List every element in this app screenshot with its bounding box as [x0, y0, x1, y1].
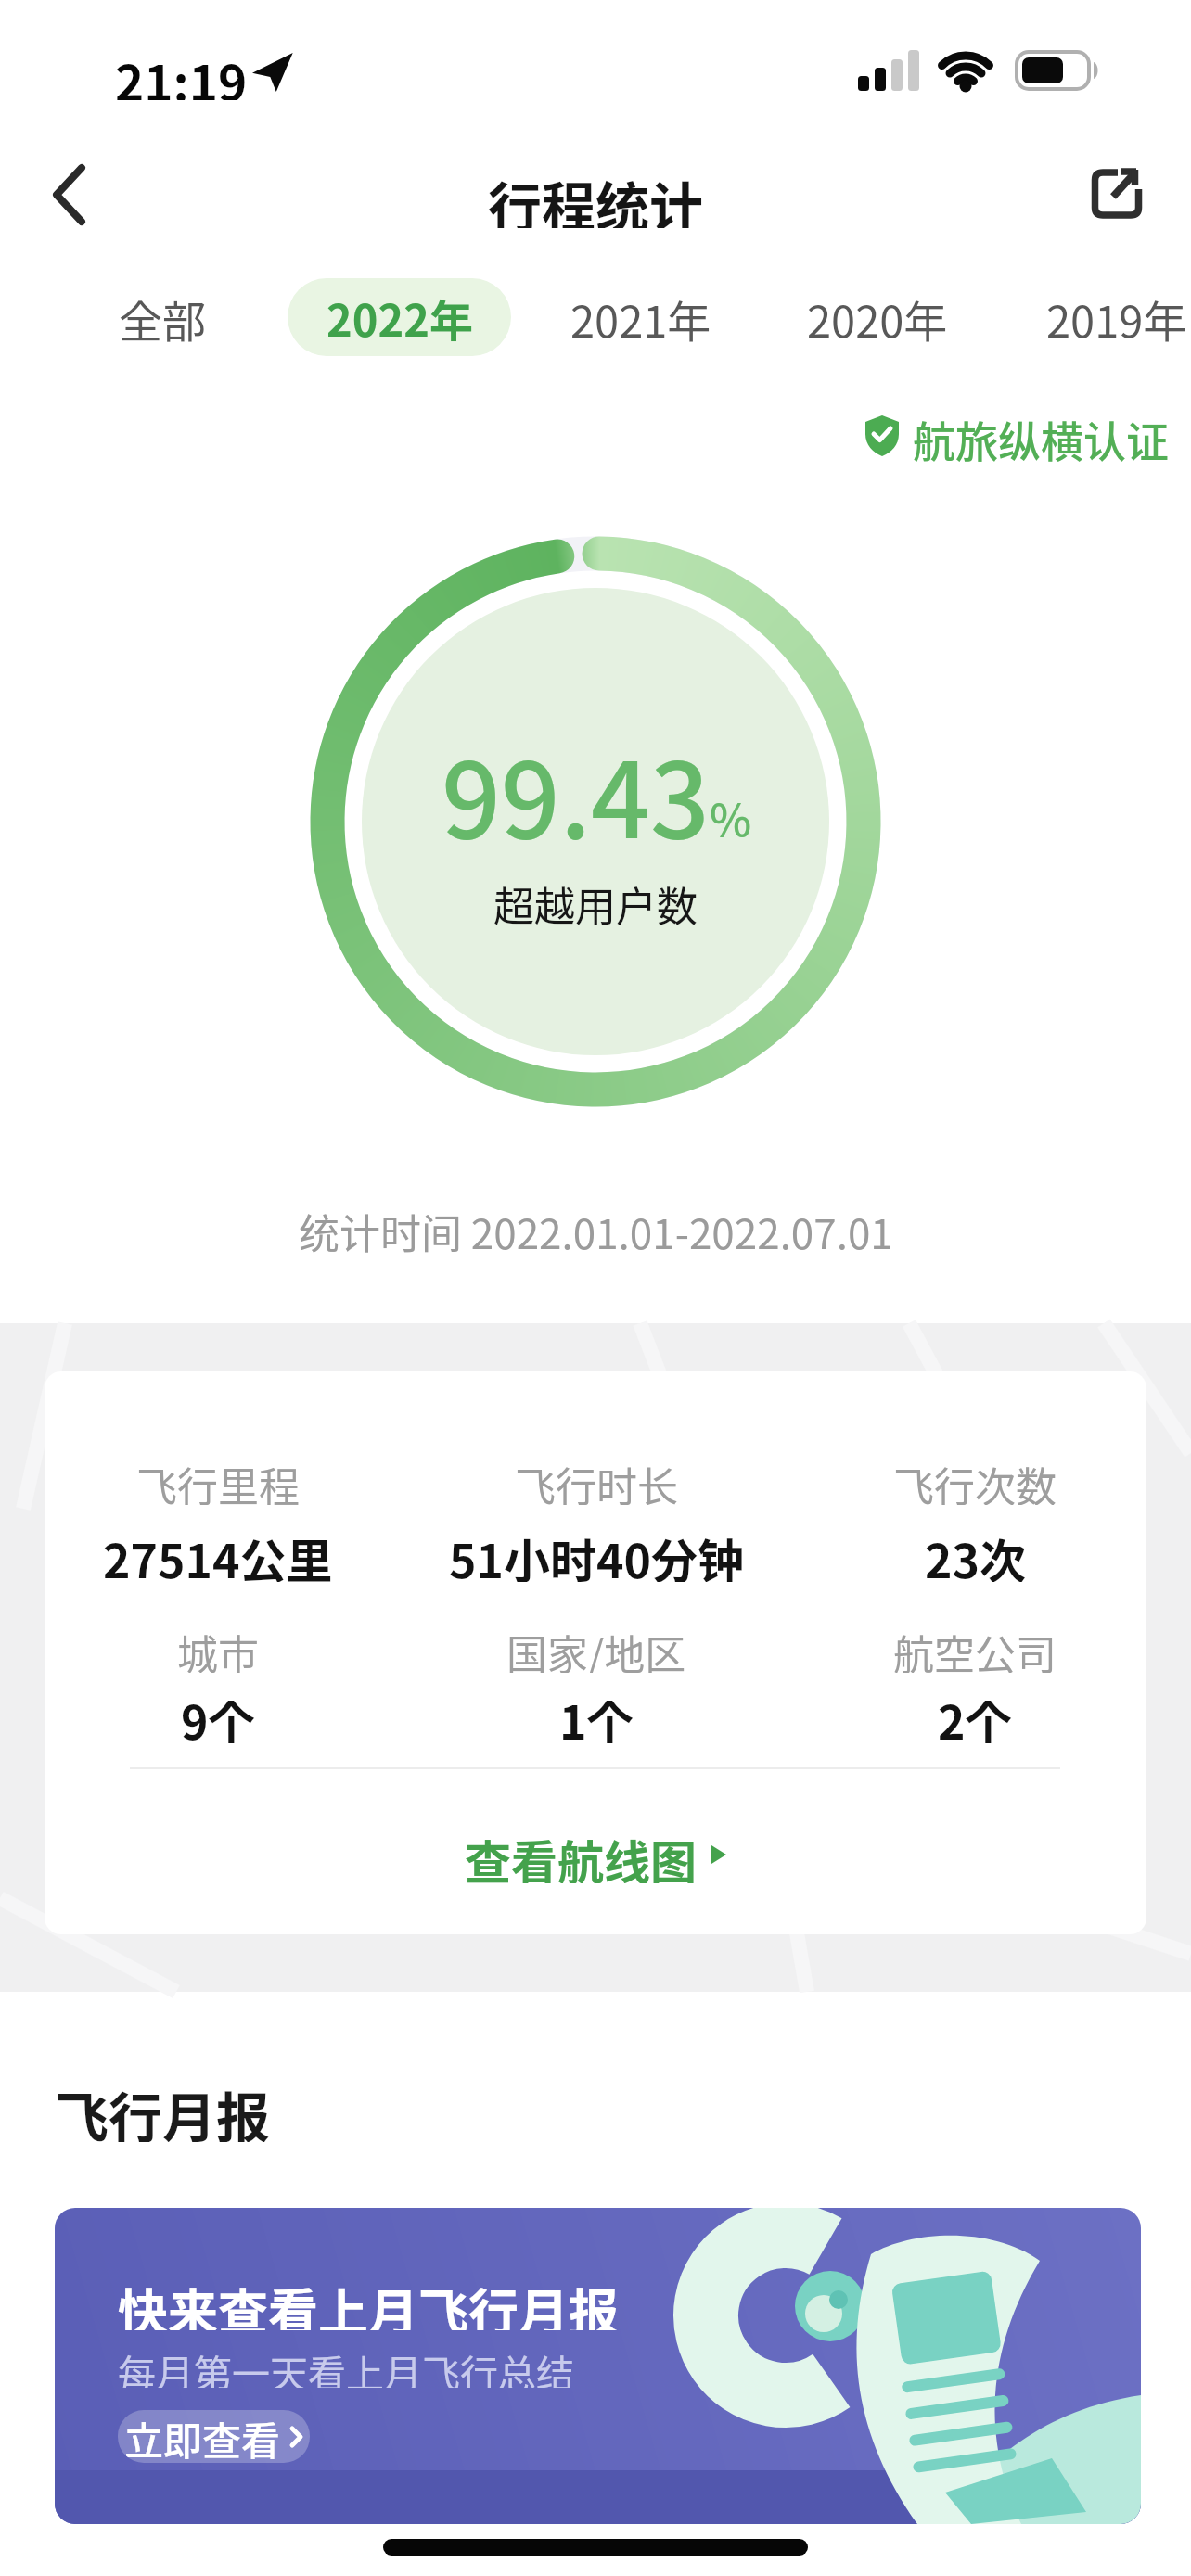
staticText: 飞行次数 [893, 1455, 1057, 1505]
staticText: 2022年 [327, 286, 473, 349]
button[interactable]: 2019年 [1033, 284, 1191, 352]
staticText: 行程统计 [488, 165, 704, 228]
staticText: 2020年 [807, 287, 948, 350]
staticText: 统计时间 2022.01.01-2022.07.01 [299, 1202, 893, 1256]
staticText: 每月第一天看上月飞行总结 [118, 2343, 574, 2388]
staticText: 51小时40分钟 [449, 1524, 744, 1582]
staticText: 2019年 [1046, 287, 1187, 350]
staticText: 快来查看上月飞行月报 [118, 2273, 619, 2330]
button[interactable]: 全部 [97, 284, 227, 352]
staticText: 立即查看 [124, 2410, 281, 2463]
staticText: 1个 [559, 1686, 634, 1743]
staticText: 9个 [181, 1686, 255, 1743]
button[interactable] [28, 148, 111, 241]
button[interactable]: 查看航线图 [411, 1826, 782, 1883]
staticText: 99.43 [442, 718, 710, 840]
button[interactable]: 立即查看 [118, 2410, 310, 2463]
staticText: 飞行时长 [515, 1455, 678, 1505]
staticText: 国家/地区 [506, 1623, 686, 1673]
staticText: 23次 [925, 1524, 1026, 1582]
staticText: 飞行里程 [136, 1455, 300, 1505]
staticText: 超越用户数 [493, 874, 698, 928]
staticText: 航空公司 [893, 1623, 1057, 1673]
staticText: 全部 [119, 287, 206, 350]
button[interactable]: 快来查看上月飞行月报 [55, 2208, 1141, 2524]
button[interactable]: 2020年 [794, 284, 961, 352]
staticText: 城市 [177, 1623, 259, 1673]
staticText: 27514公里 [103, 1524, 333, 1582]
button[interactable] [1072, 148, 1160, 236]
staticText: 飞行月报 [55, 2075, 271, 2142]
button[interactable]: 2022年 [288, 278, 511, 356]
staticText: 航旅纵横认证 [913, 408, 1169, 464]
staticText: 查看航线图 [465, 1826, 697, 1883]
staticText: 2个 [938, 1686, 1012, 1743]
staticText: % [710, 784, 752, 842]
staticText: 21:19 [115, 45, 248, 100]
staticText: 2021年 [570, 287, 711, 350]
button[interactable]: 2021年 [557, 284, 724, 352]
